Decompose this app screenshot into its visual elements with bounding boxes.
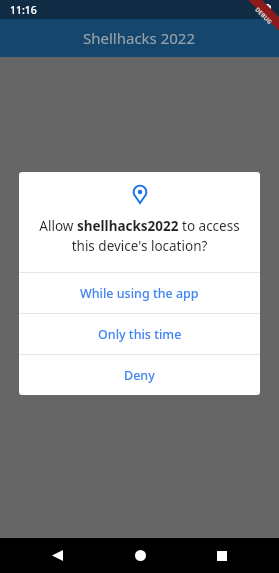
staticText: DEBUG: [253, 6, 274, 26]
button[interactable]: While using the app: [19, 273, 260, 313]
staticText: 11:16: [10, 3, 37, 17]
button[interactable]: Deny: [19, 355, 260, 395]
button[interactable]: Home: [114, 538, 166, 573]
button[interactable]: Recent apps: [196, 538, 248, 573]
staticText: While using the app: [80, 285, 199, 302]
staticText: Only this time: [98, 326, 182, 343]
button[interactable]: Back: [31, 538, 83, 573]
staticText: Deny: [124, 367, 155, 384]
staticText: Allow shellhacks2022 to access this devi…: [32, 217, 247, 255]
button[interactable]: Only this time: [19, 314, 260, 354]
staticText: Shellhacks 2022: [83, 28, 196, 48]
